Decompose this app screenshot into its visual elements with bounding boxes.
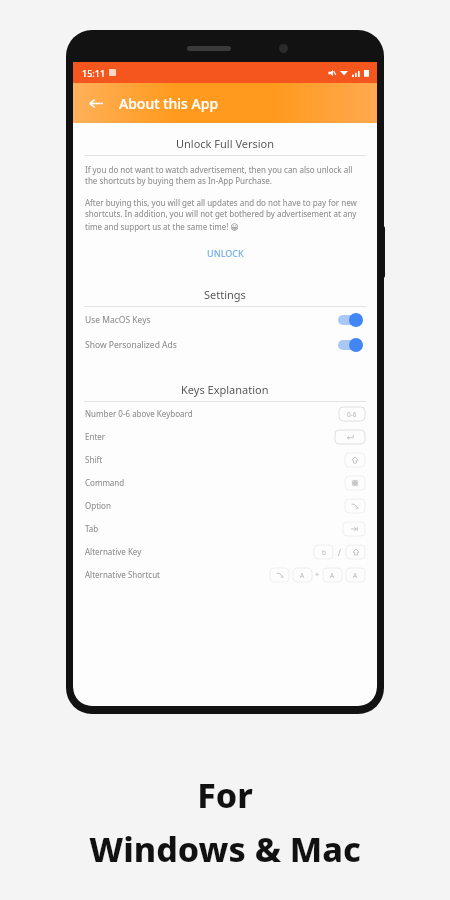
staticText: For (197, 772, 253, 818)
button[interactable]: Command (73, 471, 377, 494)
button[interactable]: Alternative Shortcut (73, 563, 377, 586)
staticText: Settings (204, 287, 246, 302)
button[interactable]: Enter (73, 425, 377, 448)
staticText: Option (85, 500, 345, 511)
button[interactable]: Alternative Key (73, 540, 377, 563)
button[interactable]: UNLOCK (195, 244, 256, 262)
button[interactable]: Use MacOS Keys (73, 307, 377, 332)
staticText: Shift (85, 454, 345, 465)
staticText: About this App (119, 94, 219, 113)
staticText: b (322, 548, 326, 557)
staticText: Tab (85, 523, 343, 534)
staticText: A (330, 571, 335, 580)
staticText: 0-6 (347, 410, 357, 419)
staticText: Keys Explanation (181, 382, 269, 397)
button[interactable]: Back (81, 89, 109, 117)
staticText: 15:11 (82, 67, 106, 79)
button[interactable]: Show Personalized Ads (73, 332, 377, 357)
staticText: UNLOCK (207, 247, 244, 259)
staticText: + (315, 570, 320, 580)
staticText: Command (85, 477, 345, 488)
staticText: After buying this, you will get all upda… (85, 197, 365, 232)
staticText: Use MacOS Keys (85, 314, 335, 326)
staticText: Unlock Full Version (176, 136, 275, 151)
staticText: If you do not want to watch advertisemen… (85, 164, 365, 187)
staticText: Show Personalized Ads (85, 339, 335, 351)
staticText: Alternative Shortcut (85, 569, 270, 580)
staticText: Alternative Key (85, 546, 314, 557)
staticText: Number 0-6 above Keyboard (85, 408, 339, 419)
button[interactable]: Shift (73, 448, 377, 471)
staticText: A (353, 571, 358, 580)
staticText: / (338, 547, 341, 558)
staticText: A (300, 571, 305, 580)
button[interactable]: Tab (73, 517, 377, 540)
button[interactable]: Option (73, 494, 377, 517)
staticText: Enter (85, 431, 335, 442)
button[interactable]: Number 0-6 above Keyboard (73, 402, 377, 425)
staticText: Windows & Mac (89, 826, 361, 872)
